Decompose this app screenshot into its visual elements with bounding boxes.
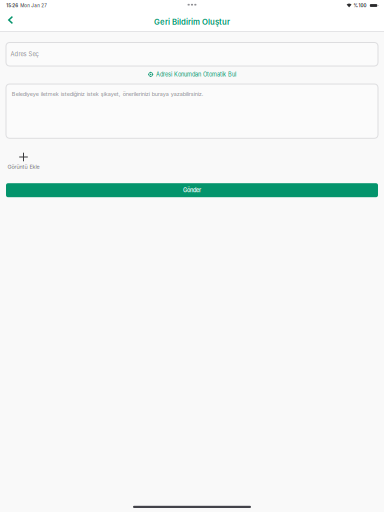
button[interactable]: Görüntü Ekle: [6, 153, 41, 170]
staticText: Gönder: [183, 187, 201, 194]
button[interactable]: Adresi Konumdan Otomatik Bul: [148, 71, 236, 77]
button[interactable]: Adres Seç: [6, 42, 378, 66]
staticText: 15:26: [6, 3, 18, 8]
button[interactable]: Gönder: [6, 183, 378, 197]
staticText: %100: [354, 3, 367, 8]
staticText: Belediyeye iletmek istediğiniz istek şik…: [12, 91, 204, 97]
staticText: Geri Bildirim Oluştur: [154, 17, 230, 27]
staticText: Görüntü Ekle: [7, 163, 39, 170]
staticText: Adres Seç: [10, 51, 38, 58]
staticText: Adresi Konumdan Otomatik Bul: [156, 71, 236, 78]
button[interactable]: Back: [0, 15, 19, 29]
staticText: Mon Jan 27: [18, 3, 47, 8]
